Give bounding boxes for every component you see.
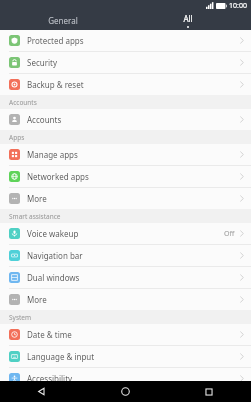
button[interactable]: More	[0, 289, 251, 310]
staticText: Accounts	[9, 98, 37, 107]
button[interactable]: Security	[0, 52, 251, 74]
staticText: Smart assistance	[9, 212, 61, 221]
staticText: Navigation bar	[27, 250, 240, 261]
staticText: Accounts	[27, 114, 240, 125]
staticText: More	[27, 294, 240, 305]
staticText: Manage apps	[27, 149, 240, 160]
button[interactable]: Voice wakeup	[0, 223, 251, 245]
button[interactable]: Accessibility	[0, 368, 251, 381]
button[interactable]: Navigation bar	[0, 245, 251, 267]
button[interactable]: Language & input	[0, 346, 251, 368]
staticText: Security	[27, 57, 240, 68]
staticText: Networked apps	[27, 171, 240, 182]
staticText: Protected apps	[27, 35, 240, 46]
button[interactable]: Networked apps	[0, 166, 251, 188]
staticText: General	[48, 15, 78, 26]
button[interactable]: Backup & reset	[0, 74, 251, 95]
staticText: More	[27, 193, 240, 204]
button[interactable]: Back	[0, 381, 83, 402]
staticText: Accessibility	[27, 373, 240, 381]
staticText: All	[183, 13, 193, 24]
button[interactable]: Manage apps	[0, 144, 251, 166]
staticText: Apps	[9, 133, 25, 142]
staticText: Dual windows	[27, 272, 240, 283]
button[interactable]: More	[0, 188, 251, 209]
staticText: 10:00	[229, 1, 247, 11]
staticText: Off	[224, 229, 235, 239]
button[interactable]: Home	[83, 381, 167, 402]
staticText: Backup & reset	[27, 79, 240, 90]
button[interactable]: Recent apps	[167, 381, 251, 402]
button[interactable]: General	[0, 11, 125, 30]
staticText: Language & input	[27, 351, 240, 362]
button[interactable]: All	[125, 11, 251, 30]
staticText: Date & time	[27, 329, 240, 340]
button[interactable]: Dual windows	[0, 267, 251, 289]
staticText: System	[9, 313, 32, 322]
button[interactable]: Accounts	[0, 109, 251, 130]
staticText: Voice wakeup	[27, 228, 224, 239]
button[interactable]: Protected apps	[0, 30, 251, 52]
button[interactable]: Date & time	[0, 324, 251, 346]
